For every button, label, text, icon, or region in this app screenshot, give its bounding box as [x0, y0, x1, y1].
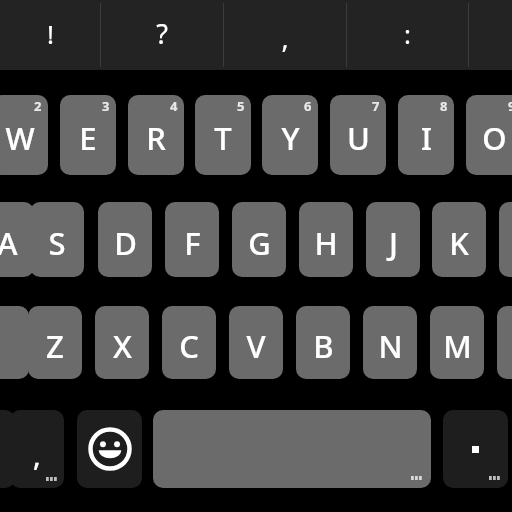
staticText: M: [443, 325, 472, 367]
button[interactable]: R: [128, 95, 184, 175]
staticText: 5: [237, 97, 245, 115]
button[interactable]: N: [363, 306, 417, 379]
staticText: K: [449, 222, 469, 264]
button[interactable]: Space: [153, 410, 431, 488]
staticText: Z: [46, 325, 64, 367]
staticText: F: [184, 222, 201, 264]
button[interactable]: ,: [231, 0, 339, 70]
staticText: R: [146, 117, 166, 159]
button[interactable]: [0, 306, 29, 379]
button[interactable]: Emoji: [77, 410, 142, 488]
staticText: D: [114, 222, 137, 264]
button[interactable]: C: [162, 306, 216, 379]
staticText: I: [421, 117, 432, 159]
button[interactable]: M: [430, 306, 484, 379]
staticText: U: [347, 117, 370, 159]
staticText: S: [48, 222, 66, 264]
staticText: C: [179, 325, 199, 367]
button[interactable]: ?: [108, 0, 216, 70]
button[interactable]: [497, 306, 512, 379]
staticText: G: [248, 222, 271, 264]
staticText: 3: [102, 97, 110, 115]
staticText: 2: [34, 97, 42, 115]
staticText: T: [214, 117, 232, 159]
button[interactable]: Symbols: [0, 410, 15, 488]
staticText: X: [113, 325, 132, 367]
button[interactable]: ,: [10, 410, 64, 488]
staticText: N: [378, 325, 403, 367]
button[interactable]: :: [354, 0, 460, 70]
button[interactable]: U: [330, 95, 386, 175]
staticText: 7: [372, 97, 380, 115]
staticText: 9: [508, 97, 512, 115]
button[interactable]: S: [30, 202, 84, 277]
staticText: ,: [281, 19, 289, 56]
staticText: V: [246, 325, 266, 367]
button[interactable]: Z: [28, 306, 82, 379]
staticText: B: [313, 325, 334, 367]
staticText: O: [482, 117, 507, 159]
button[interactable]: E: [60, 95, 116, 175]
staticText: E: [79, 117, 97, 159]
staticText: :: [404, 16, 411, 51]
button[interactable]: W: [0, 95, 48, 175]
staticText: !: [47, 16, 54, 51]
button[interactable]: !: [8, 0, 92, 70]
button[interactable]: K: [432, 202, 486, 277]
staticText: H: [314, 222, 338, 264]
staticText: 8: [440, 97, 448, 115]
staticText: A: [0, 222, 18, 264]
button[interactable]: O: [466, 95, 512, 175]
staticText: W: [5, 117, 35, 159]
button[interactable]: L: [499, 202, 512, 277]
button[interactable]: A: [0, 202, 34, 277]
staticText: Y: [281, 117, 300, 159]
button[interactable]: [443, 410, 508, 488]
button[interactable]: I: [398, 95, 454, 175]
button[interactable]: X: [95, 306, 149, 379]
button[interactable]: J: [366, 202, 420, 277]
staticText: 6: [304, 97, 312, 115]
button[interactable]: H: [299, 202, 353, 277]
staticText: J: [389, 222, 398, 264]
button[interactable]: T: [195, 95, 251, 175]
staticText: ,: [33, 436, 41, 474]
staticText: ?: [156, 15, 168, 52]
button[interactable]: Y: [262, 95, 318, 175]
button[interactable]: B: [296, 306, 350, 379]
staticText: 4: [170, 97, 178, 115]
button[interactable]: G: [232, 202, 286, 277]
button[interactable]: F: [165, 202, 219, 277]
button[interactable]: V: [229, 306, 283, 379]
button[interactable]: D: [98, 202, 152, 277]
